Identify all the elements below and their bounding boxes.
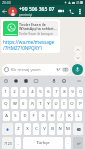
staticText: U	[54, 101, 58, 107]
button[interactable]: Türkçe	[23, 137, 63, 149]
button[interactable]: More	[74, 76, 84, 86]
staticText: I	[63, 101, 65, 107]
button[interactable]: 2	[11, 87, 18, 97]
button[interactable]: Scroll to bottom	[74, 54, 82, 62]
button[interactable]: V	[41, 123, 47, 135]
button[interactable]: 8	[61, 87, 67, 97]
button[interactable]: Voice call	[66, 6, 76, 16]
button[interactable]: I	[61, 99, 67, 109]
button[interactable]: D	[21, 111, 28, 121]
button[interactable]: G	[39, 111, 46, 121]
staticText: Bir mesaj yazın	[11, 67, 41, 73]
button[interactable]: 3	[20, 87, 27, 97]
staticText: WhatsApp	[5, 32, 17, 35]
button[interactable]: U	[53, 99, 59, 109]
staticText: T	[39, 101, 42, 107]
button[interactable]: Back	[1, 8, 8, 15]
button[interactable]: 5	[37, 87, 43, 97]
button[interactable]: ,	[15, 137, 21, 149]
staticText: M	[66, 126, 70, 132]
staticText: Tiroler Essen ile WhatsApp'ta sohbet edi…	[19, 22, 57, 31]
button[interactable]: H	[48, 111, 55, 121]
button[interactable]: J	[57, 111, 64, 121]
staticText: Z	[17, 126, 20, 132]
button[interactable]: R	[29, 99, 35, 109]
button[interactable]: Q	[2, 99, 9, 109]
staticText: 9	[71, 89, 74, 95]
button[interactable]: O	[69, 99, 75, 109]
button[interactable]: WhatsApp	[1, 19, 60, 53]
button[interactable]: N	[57, 123, 63, 135]
button[interactable]: Scroll up	[74, 46, 82, 54]
button[interactable]: P	[77, 99, 83, 109]
staticText: 8	[63, 89, 66, 95]
staticText: ,	[17, 140, 19, 146]
button[interactable]: W	[11, 99, 18, 109]
staticText: K	[68, 113, 71, 119]
staticText: .	[67, 140, 69, 146]
button[interactable]: Preferences	[59, 76, 69, 86]
staticText: +99 506 365 07 32	[19, 6, 56, 13]
button[interactable]: Clipboard	[1, 76, 11, 86]
button[interactable]: Z	[15, 123, 22, 135]
button[interactable]: ?123	[2, 137, 13, 149]
staticText: V	[43, 126, 46, 132]
button[interactable]: F	[30, 111, 37, 121]
button[interactable]: 9	[69, 87, 75, 97]
button[interactable]: Settings	[31, 76, 41, 86]
staticText: R	[31, 101, 34, 107]
button[interactable]: C	[33, 123, 39, 135]
staticText: 20:00	[2, 0, 11, 5]
button[interactable]: .	[65, 137, 71, 149]
staticText: G	[41, 113, 45, 119]
staticText: S	[14, 113, 17, 119]
button[interactable]: X	[24, 123, 31, 135]
staticText: 2	[13, 89, 16, 95]
staticText: Y	[47, 101, 50, 107]
button[interactable]: B	[49, 123, 55, 135]
staticText: J	[60, 113, 62, 119]
staticText: Türkçe	[36, 140, 50, 146]
button[interactable]: More options	[76, 7, 84, 15]
button[interactable]: Bir mesaj yazın	[2, 64, 70, 75]
button[interactable]: Y	[45, 99, 51, 109]
button[interactable]: A	[3, 111, 10, 121]
staticText: B	[51, 126, 54, 132]
button[interactable]: T	[37, 99, 43, 109]
button[interactable]: 6	[45, 87, 51, 97]
button[interactable]: Enter	[73, 137, 83, 149]
button[interactable]: L	[75, 111, 82, 121]
button[interactable]: 4	[29, 87, 35, 97]
button[interactable]: GIF	[21, 76, 31, 86]
staticText: C	[35, 126, 38, 132]
button[interactable]: Profile photo	[8, 7, 17, 16]
staticText: 0	[79, 89, 82, 95]
button[interactable]: E	[20, 99, 27, 109]
staticText: çevrimiçi	[19, 13, 33, 17]
staticText: N	[58, 126, 62, 132]
staticText: 7	[55, 89, 58, 95]
button[interactable]: Voice input	[49, 76, 59, 86]
staticText: F	[32, 113, 35, 119]
button[interactable]: 1	[2, 87, 9, 97]
button[interactable]: K	[66, 111, 73, 121]
staticText: 3	[22, 89, 25, 95]
button[interactable]: S	[12, 111, 19, 121]
button[interactable]: Backspace	[73, 123, 83, 135]
staticText: 45	[76, 1, 80, 5]
button[interactable]: 7	[53, 87, 59, 97]
staticText: H	[50, 113, 54, 119]
staticText: D	[23, 113, 27, 119]
staticText: P	[79, 101, 82, 107]
button[interactable]: Shift	[2, 123, 13, 135]
button[interactable]: Sticker	[11, 76, 21, 86]
button[interactable]: Voice message	[72, 64, 83, 75]
button[interactable]: 0	[77, 87, 83, 97]
staticText: https://wa.me/message /7HMZ7?0NPQXY1	[3, 39, 55, 51]
button[interactable]: Video call	[56, 6, 66, 16]
staticText: E	[22, 101, 25, 107]
staticText: A	[5, 113, 8, 119]
button[interactable]: M	[65, 123, 71, 135]
staticText: Q	[4, 101, 8, 107]
button[interactable]: +99 506 365 07 32	[19, 6, 56, 17]
